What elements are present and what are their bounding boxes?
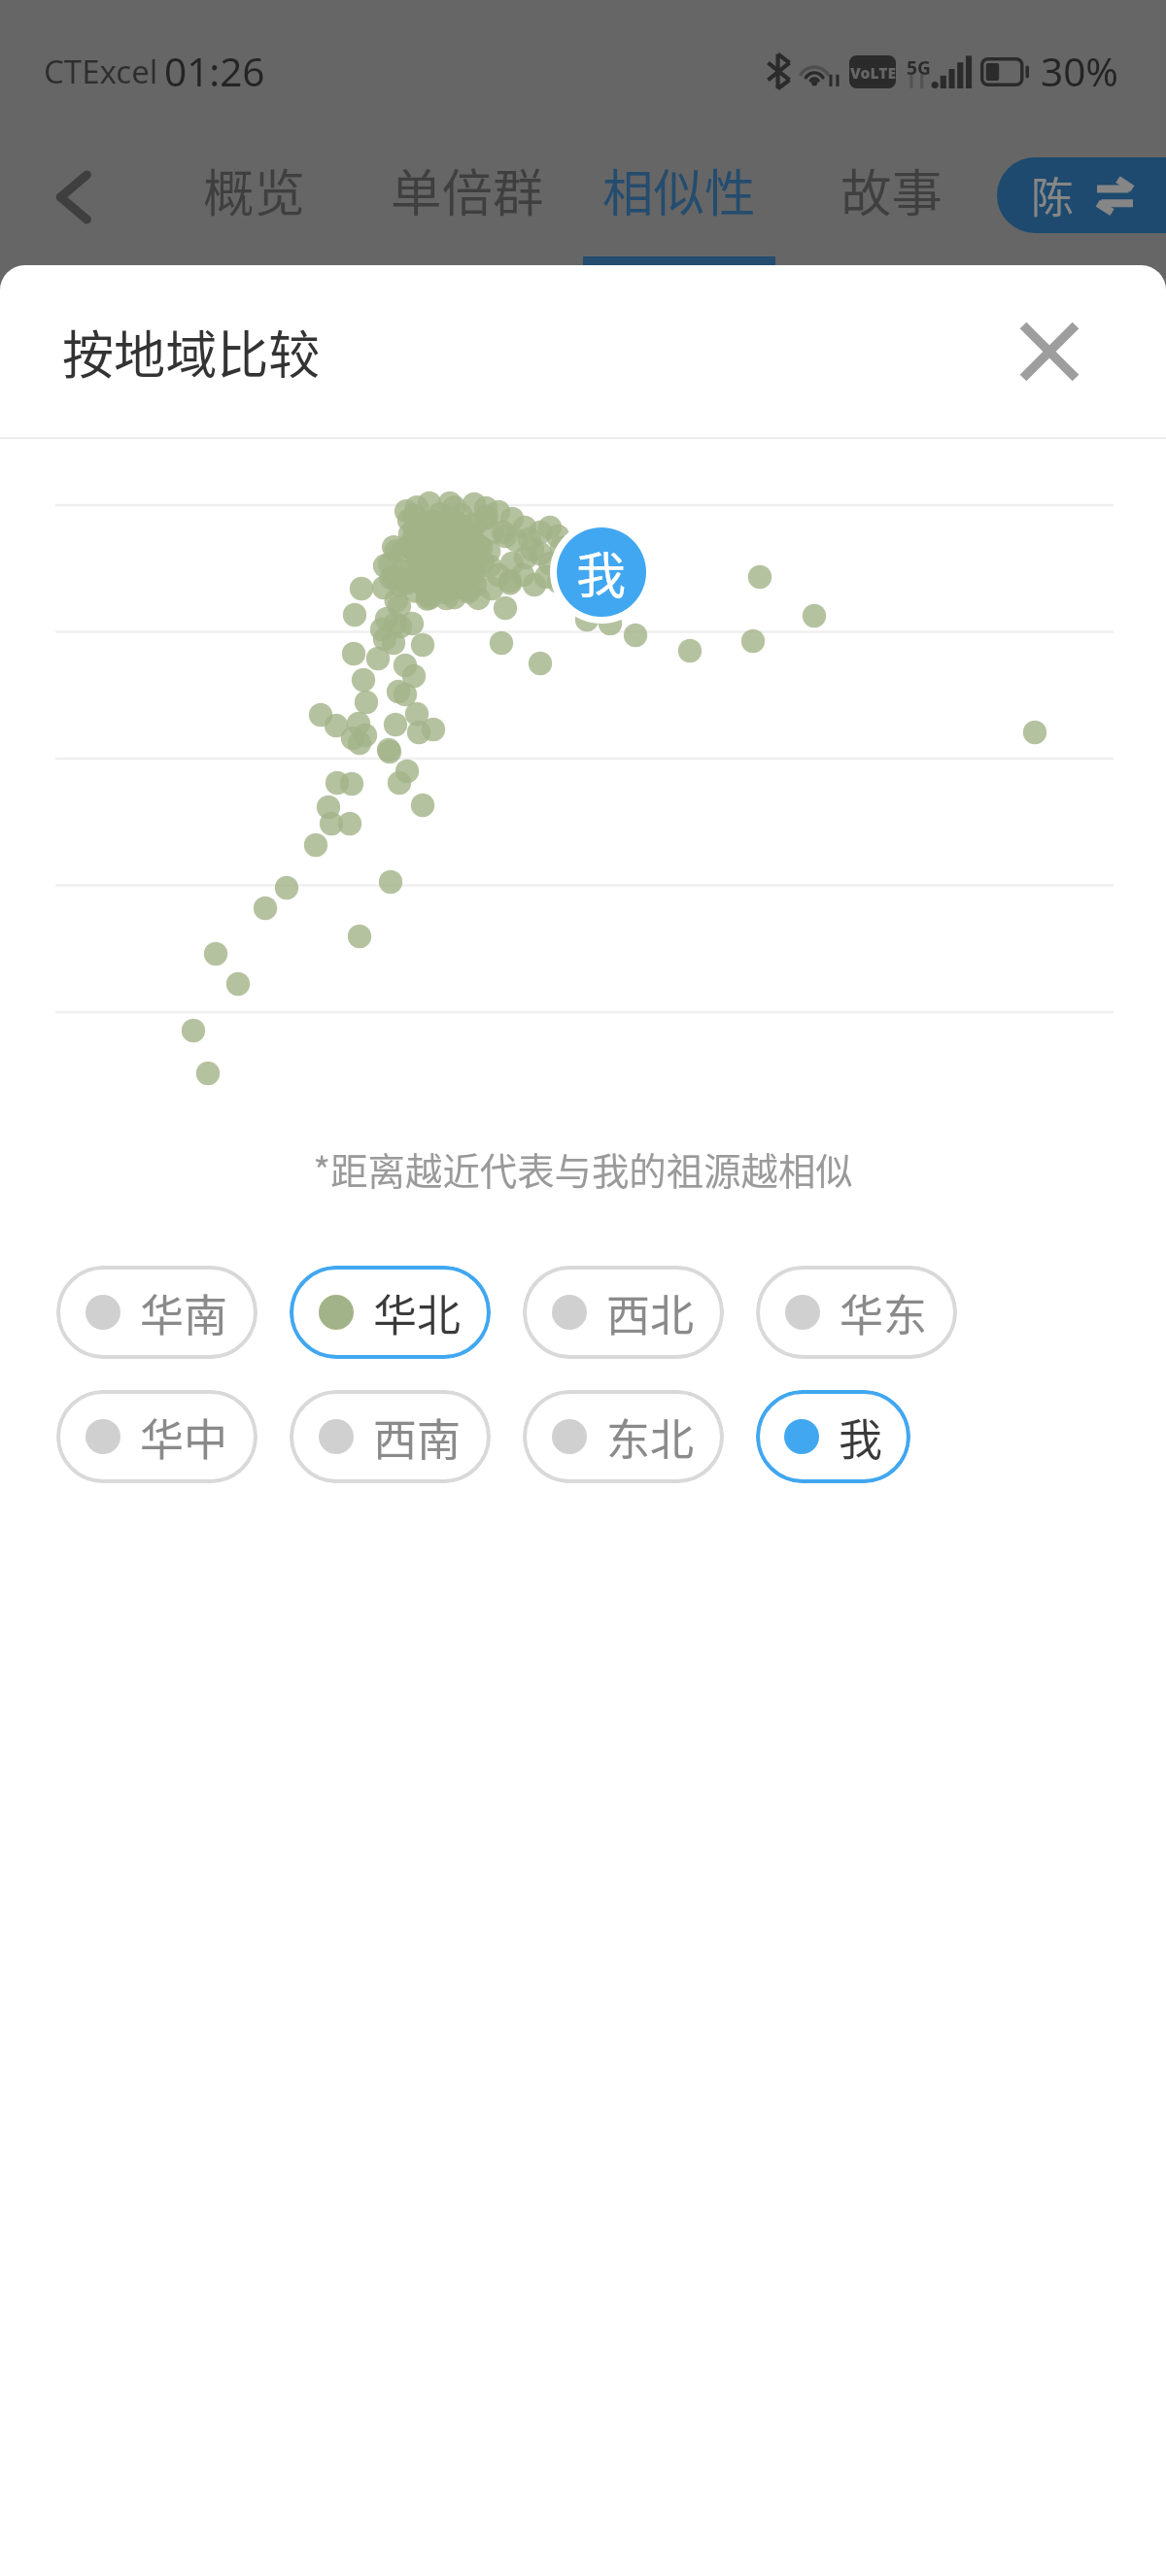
staticText: 华北 xyxy=(373,1281,462,1344)
staticText: 01:26 xyxy=(164,45,265,98)
staticText: 5G xyxy=(907,54,931,80)
staticText: 西南 xyxy=(373,1406,462,1469)
button[interactable]: 华东 xyxy=(756,1266,957,1359)
staticText: 陈 xyxy=(1031,164,1075,226)
staticText: 西北 xyxy=(606,1281,695,1344)
staticText: 相似性 xyxy=(602,153,756,226)
staticText: 30% xyxy=(1041,45,1118,98)
button[interactable]: 华南 xyxy=(56,1266,257,1359)
staticText: 单倍群 xyxy=(391,153,544,226)
staticText: 华南 xyxy=(140,1281,228,1344)
staticText: *距离越近代表与我的祖源越相似 xyxy=(0,1141,1166,1196)
button[interactable]: Close xyxy=(988,290,1111,413)
button[interactable]: Back xyxy=(17,131,128,262)
button[interactable]: 华中 xyxy=(56,1390,257,1483)
button[interactable]: 相似性 xyxy=(583,128,775,268)
button[interactable]: 华北 xyxy=(290,1266,491,1359)
staticText: 东北 xyxy=(606,1406,695,1469)
staticText: 华中 xyxy=(140,1406,228,1469)
button[interactable]: 西南 xyxy=(290,1390,491,1483)
staticText: VoLTE xyxy=(850,62,896,83)
staticText: CTExcel xyxy=(44,50,158,93)
staticText: 按地域比较 xyxy=(62,314,321,389)
staticText: 故事 xyxy=(840,153,943,226)
button[interactable]: 我 xyxy=(557,527,646,617)
staticText: 华东 xyxy=(840,1281,928,1344)
staticText: 我 xyxy=(576,536,627,608)
button[interactable]: 单倍群 xyxy=(371,128,564,268)
button[interactable]: Switch profile xyxy=(997,157,1166,233)
button[interactable]: 我 xyxy=(756,1390,910,1483)
button[interactable]: 概览 xyxy=(185,128,325,268)
button[interactable]: 东北 xyxy=(523,1390,724,1483)
staticText: 我 xyxy=(839,1406,883,1469)
button[interactable]: 故事 xyxy=(822,128,962,268)
staticText: 概览 xyxy=(203,153,306,226)
button[interactable]: 西北 xyxy=(523,1266,724,1359)
